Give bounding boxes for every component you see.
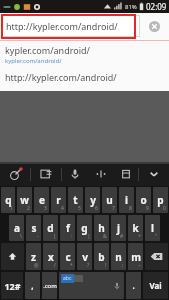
button[interactable]: s — [26, 215, 41, 241]
staticText: , — [31, 280, 34, 291]
staticText: m — [131, 250, 141, 264]
staticText: t — [73, 193, 78, 207]
staticText: & — [103, 233, 107, 240]
staticText: 8 — [129, 205, 132, 212]
staticText: u — [106, 193, 113, 207]
button[interactable]: t — [68, 187, 83, 213]
staticText: v — [82, 250, 88, 264]
staticText: ? — [87, 262, 90, 269]
staticText: 3 — [44, 205, 47, 212]
staticText: q — [5, 193, 12, 207]
button[interactable]: l — [145, 215, 160, 241]
button[interactable]: m — [128, 243, 143, 270]
staticText: : — [71, 233, 73, 240]
staticText: i — [125, 193, 128, 207]
staticText: p — [157, 193, 164, 207]
button[interactable]: 12# — [1, 272, 23, 299]
button[interactable]: Handwriting input — [0, 162, 30, 186]
button[interactable]: Clipboard — [113, 162, 138, 186]
staticText: / — [54, 262, 56, 269]
staticText: @ — [34, 262, 39, 269]
button[interactable]: w — [17, 187, 32, 213]
button[interactable]: j — [111, 215, 126, 241]
staticText: kypler.com/android/ — [5, 44, 90, 56]
staticText: 4 — [61, 205, 64, 212]
button[interactable]: http://kypler.com/android/ — [0, 71, 169, 83]
staticText: x — [48, 250, 54, 264]
staticText: Vai — [149, 280, 162, 291]
staticText: w — [20, 193, 29, 207]
button[interactable]: x — [43, 243, 58, 270]
staticText: a — [14, 221, 20, 235]
button[interactable]: http://kypler.com/android/ — [2, 15, 140, 37]
button[interactable]: h — [94, 215, 109, 241]
staticText: + — [138, 233, 141, 240]
staticText: abc — [63, 275, 72, 282]
button[interactable]: . — [126, 272, 141, 299]
staticText: .com — [43, 282, 57, 290]
button[interactable]: d — [43, 215, 58, 241]
button[interactable]: p — [153, 187, 168, 213]
button[interactable]: r — [51, 187, 66, 213]
staticText: c — [65, 250, 71, 264]
staticText: n — [115, 250, 122, 264]
staticText: http://kypler.com/android/ — [6, 20, 118, 32]
button[interactable]: v — [77, 243, 92, 270]
button[interactable]: c — [60, 243, 75, 270]
button[interactable]: Space — [59, 272, 124, 299]
button[interactable]: a — [9, 215, 24, 241]
button[interactable]: b — [94, 243, 109, 270]
staticText: k — [132, 221, 139, 235]
button[interactable]: Cursor control — [88, 162, 113, 186]
staticText: f — [66, 221, 70, 235]
staticText: d — [47, 221, 54, 235]
button[interactable]: Keyboard layout — [31, 162, 61, 186]
button[interactable]: o — [136, 187, 151, 213]
button[interactable]: n — [111, 243, 126, 270]
button[interactable]: f — [60, 215, 75, 241]
staticText: 6 — [95, 205, 98, 212]
button[interactable]: g — [77, 215, 92, 241]
staticText: e — [39, 193, 45, 207]
button[interactable]: u — [102, 187, 117, 213]
staticText: ~ — [138, 262, 141, 269]
staticText: g — [81, 221, 88, 235]
button[interactable]: kypler.com/android/ — [0, 41, 169, 65]
button[interactable]: Hide keyboard — [139, 162, 169, 186]
staticText: r — [56, 193, 61, 207]
button[interactable]: Vai — [143, 272, 168, 299]
staticText: h — [98, 221, 105, 235]
staticText: kypler.com/android/ — [5, 57, 62, 65]
staticText: # — [120, 233, 124, 240]
staticText: 0 — [163, 205, 166, 212]
staticText: ) — [88, 233, 90, 240]
button[interactable]: k — [128, 215, 143, 241]
staticText: - — [37, 233, 39, 240]
staticText: 1 — [10, 205, 13, 212]
staticText: ( — [54, 233, 56, 240]
staticText: \ — [20, 233, 22, 240]
staticText: ; — [122, 262, 124, 269]
staticText: z — [31, 250, 36, 264]
button[interactable]: Clear text — [140, 13, 169, 40]
staticText: 2 — [27, 205, 30, 212]
button[interactable]: Shift — [1, 243, 24, 270]
button[interactable]: i — [119, 187, 134, 213]
staticText: 81% — [125, 3, 137, 11]
button[interactable]: e — [34, 187, 49, 213]
staticText: " — [155, 233, 158, 240]
staticText: 02:09 — [146, 1, 167, 12]
button[interactable]: z — [26, 243, 41, 270]
button[interactable]: .com — [42, 272, 57, 299]
button[interactable]: q — [1, 187, 15, 213]
button[interactable]: Voice input — [62, 162, 88, 186]
staticText: s — [31, 221, 37, 235]
staticText: * — [70, 262, 73, 269]
button[interactable]: Backspace — [145, 243, 168, 270]
button[interactable]: y — [85, 187, 100, 213]
staticText: 7 — [112, 205, 115, 212]
staticText: o — [140, 193, 147, 207]
staticText: 5 — [78, 205, 81, 212]
button[interactable]: , — [25, 272, 40, 299]
staticText: j — [117, 221, 120, 235]
